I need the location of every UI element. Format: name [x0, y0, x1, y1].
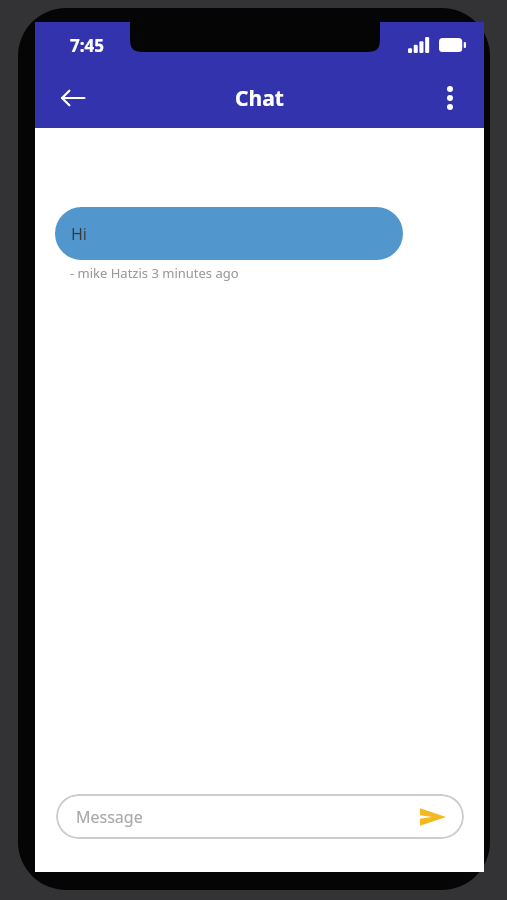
staticText: Message	[76, 806, 143, 828]
button[interactable]: Message	[56, 794, 464, 839]
staticText: - mike Hatzis 3 minutes ago	[70, 264, 239, 282]
button[interactable]: Send	[416, 800, 450, 834]
button[interactable]: Hi	[55, 207, 403, 260]
staticText: Chat	[235, 84, 284, 113]
button[interactable]: Back	[51, 76, 95, 120]
staticText: Hi	[71, 223, 87, 245]
button[interactable]: More options	[430, 78, 470, 118]
staticText: 7:45	[70, 34, 104, 57]
